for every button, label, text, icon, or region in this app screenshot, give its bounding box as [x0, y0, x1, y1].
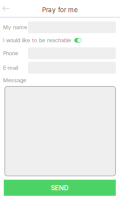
staticText: I would like to be reachable [3, 37, 71, 44]
staticText: SEND [51, 184, 69, 192]
staticText: Phone [3, 50, 18, 57]
staticText: My name [3, 24, 27, 31]
staticText: Pray for me [42, 6, 78, 14]
button[interactable]: Back [0, 0, 14, 17]
button[interactable]: SEND [4, 180, 116, 196]
staticText: Message [3, 77, 26, 83]
staticText: E-mail [3, 65, 18, 71]
button[interactable]: I would like to be reachable [74, 38, 82, 43]
